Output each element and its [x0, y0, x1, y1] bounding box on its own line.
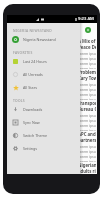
staticText: Lorem ipsum dolor	[78, 144, 96, 149]
button[interactable]: APC and PDP in	[7, 131, 97, 162]
staticText: Lorem ipsum dolor	[78, 128, 96, 131]
staticText: Lorem ipsum dolor	[78, 82, 96, 87]
staticText: Bureau Chief Resigns	[78, 106, 96, 112]
button[interactable]: All Stars	[7, 81, 80, 94]
button[interactable]: Nigerian literacy rate for	[7, 162, 97, 174]
staticText: Peace Deal Nears	[78, 44, 96, 50]
button[interactable]: Switch Theme	[7, 129, 80, 142]
button[interactable]: Sync Now	[7, 116, 80, 129]
staticText: Lorem ipsum dolor	[78, 149, 96, 154]
staticText: Sync Now	[23, 120, 40, 125]
button[interactable]: Downloads	[7, 103, 80, 116]
button[interactable]: Transportation Dept.	[7, 100, 97, 131]
staticText: Lorem ipsum dolor	[78, 61, 96, 66]
button[interactable]: A Mix of Hope and Fear as	[7, 38, 97, 69]
staticText: All Stars	[23, 85, 37, 90]
staticText: Problems Mount for	[78, 69, 96, 75]
staticText: Switch Theme	[23, 133, 48, 138]
staticText: Nigerian literacy rate for	[78, 162, 96, 168]
staticText: partnership talks	[78, 137, 96, 143]
button[interactable]: Settings	[7, 142, 80, 155]
staticText: Lorem ipsum dolor	[78, 113, 96, 118]
staticText: All Unreads	[23, 72, 43, 77]
staticText: Lorem ipsum dolor	[78, 51, 96, 56]
staticText: Transportation Dept.	[78, 100, 96, 106]
staticText: NIGERIA NEWSSTAND	[13, 28, 52, 32]
staticText: APC and PDP in	[78, 131, 96, 137]
staticText: Lorem ipsum dolor	[78, 154, 96, 159]
staticText: TOOLS	[13, 98, 25, 102]
button[interactable]: Nigeria Newsstand	[7, 33, 80, 46]
staticText: adults rises	[78, 168, 96, 174]
button[interactable]: Last 24 Hours	[7, 55, 80, 68]
staticText: Lorem ipsum dolor	[78, 87, 96, 92]
staticText: Lorem ipsum dolor	[78, 123, 96, 128]
button[interactable]: Problems Mount for	[7, 69, 97, 100]
staticText: Cary Town Council	[78, 75, 96, 81]
staticText: Lorem ipsum dolor	[78, 159, 96, 162]
staticText: Lorem ipsum dolor	[78, 56, 96, 61]
staticText: Lorem ipsum dolor	[78, 118, 96, 123]
staticText: Lorem ipsum dolor	[78, 92, 96, 97]
staticText: Lorem ipsum dolor	[78, 97, 96, 100]
staticText: Settings	[23, 146, 38, 151]
staticText: Lorem ipsum dolor	[78, 66, 96, 69]
staticText: Nigeria Newsstand	[23, 37, 56, 42]
staticText: Last 24 Hours	[23, 59, 47, 64]
staticText: FAVORITES	[13, 50, 33, 54]
staticText: 9:23 AM	[78, 16, 94, 22]
button[interactable]: All Unreads	[7, 68, 80, 81]
staticText: Downloads	[23, 107, 43, 112]
staticText: A Mix of Hope and Fear as	[78, 38, 96, 44]
